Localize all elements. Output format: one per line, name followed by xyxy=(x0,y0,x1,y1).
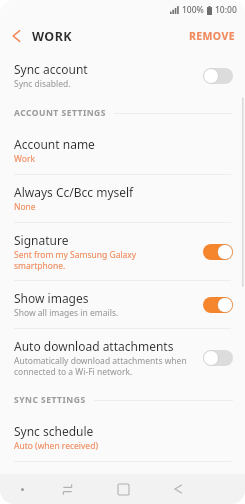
button[interactable]: Toggle off xyxy=(203,350,233,366)
staticText: 3 days xyxy=(14,488,40,495)
button[interactable]: Toggle on xyxy=(203,297,233,313)
button[interactable]: Recents xyxy=(52,474,82,504)
staticText: SYNC SETTINGS xyxy=(14,394,86,406)
staticText: Work xyxy=(14,153,35,165)
button[interactable]: Always Cc/Bcc myself xyxy=(0,175,245,222)
staticText: Sync disabled. xyxy=(14,78,71,90)
staticText: 100% xyxy=(182,4,204,16)
button[interactable]: Back xyxy=(163,474,193,504)
button[interactable]: Sync account xyxy=(0,52,245,99)
staticText: Auto download attachments xyxy=(14,338,174,354)
staticText: WORK xyxy=(32,28,72,45)
staticText: Automatically download attachments when … xyxy=(14,355,187,377)
staticText: 10:00 xyxy=(215,4,237,16)
staticText: Period to sync Email xyxy=(14,471,128,487)
staticText: ACCOUNT SETTINGS xyxy=(14,107,106,119)
button[interactable]: Sync schedule xyxy=(0,414,245,461)
button[interactable]: Keyboard indicator xyxy=(18,485,26,493)
staticText: Show all images in emails. xyxy=(14,307,119,319)
staticText: None xyxy=(14,201,36,213)
button[interactable]: Auto download attachments xyxy=(0,329,245,386)
staticText: Account name xyxy=(14,136,95,152)
button[interactable]: Show images xyxy=(0,281,245,328)
button[interactable]: Back xyxy=(0,23,33,49)
button[interactable]: Signature xyxy=(0,223,245,280)
button[interactable]: REMOVE xyxy=(179,23,245,49)
button[interactable]: Home xyxy=(108,474,138,504)
staticText: Signature xyxy=(14,232,69,248)
button[interactable]: Toggle on xyxy=(203,244,233,260)
button[interactable]: Period to sync Email xyxy=(0,462,245,504)
staticText: REMOVE xyxy=(189,29,235,43)
staticText: Sync schedule xyxy=(14,423,94,439)
staticText: Sent from my Samsung Galaxy smartphone. xyxy=(14,249,137,271)
button[interactable]: Account name xyxy=(0,127,245,174)
staticText: Always Cc/Bcc myself xyxy=(14,184,134,200)
staticText: Show images xyxy=(14,290,89,306)
staticText: Auto (when received) xyxy=(14,440,98,452)
button[interactable]: Toggle off xyxy=(203,68,233,84)
staticText: Sync account xyxy=(14,61,88,77)
